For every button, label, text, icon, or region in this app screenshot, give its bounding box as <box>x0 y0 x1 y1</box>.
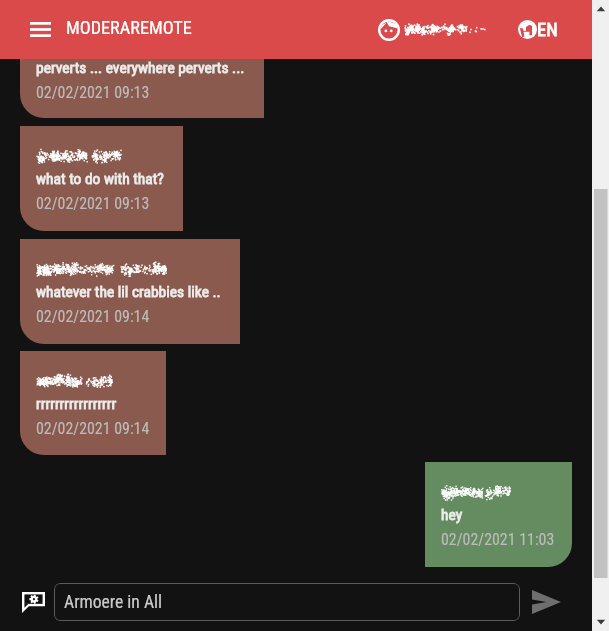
button[interactable]: Send <box>529 585 563 619</box>
staticText: Armoere in All <box>64 592 163 613</box>
staticText: rrrrrrrrrrrrrrrrr <box>36 395 117 413</box>
staticText: 02/02/2021 09:14 <box>36 307 150 326</box>
button[interactable]: Open navigation menu <box>22 11 58 47</box>
button[interactable]: rrrrrrrrrrrrrrrrr <box>20 351 166 455</box>
staticText: EN <box>537 19 558 41</box>
button[interactable]: hey <box>425 462 572 567</box>
button[interactable]: perverts ... everywhere perverts ... <box>20 15 264 118</box>
staticText: whatever the lil crabbies like .. <box>36 283 221 301</box>
button[interactable]: Change language <box>518 14 558 45</box>
staticText: 02/02/2021 09:14 <box>36 419 150 438</box>
staticText: what to do with that? <box>36 170 164 188</box>
button[interactable]: what to do with that? <box>20 126 183 231</box>
button[interactable]: Armoere in All <box>54 583 520 621</box>
staticText: 02/02/2021 11:03 <box>441 530 555 549</box>
staticText: 02/02/2021 09:13 <box>36 83 150 102</box>
button[interactable]: Chat settings <box>18 587 48 617</box>
button[interactable]: Account <box>378 14 486 45</box>
button[interactable]: whatever the lil crabbies like .. <box>20 239 240 344</box>
staticText: MODERAREMOTE <box>66 17 236 38</box>
staticText: perverts ... everywhere perverts ... <box>36 59 245 77</box>
staticText: hey <box>441 506 463 524</box>
staticText: 02/02/2021 09:13 <box>36 194 150 213</box>
